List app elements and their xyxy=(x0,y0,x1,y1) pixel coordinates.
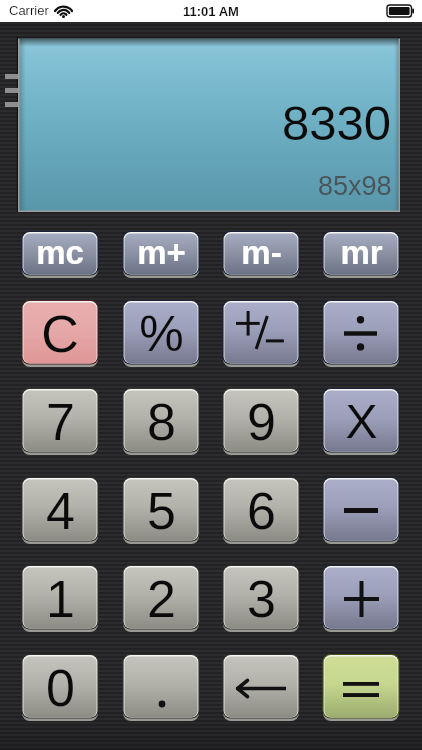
staticText: 8 xyxy=(147,393,176,451)
button[interactable]: Menu xyxy=(5,74,18,108)
staticText: C xyxy=(41,305,79,363)
button[interactable]: Plus minus xyxy=(222,300,300,367)
staticText: mc xyxy=(36,234,84,271)
button[interactable]: Decimal point xyxy=(122,654,200,721)
staticText: 85x98 xyxy=(318,171,392,201)
button[interactable]: m- xyxy=(222,231,300,278)
button[interactable]: % xyxy=(122,300,200,367)
button[interactable]: Minus xyxy=(322,477,400,544)
button[interactable]: 6 xyxy=(222,477,300,544)
staticText: 2 xyxy=(147,570,176,628)
button[interactable]: 8 xyxy=(122,388,200,455)
button[interactable]: 3 xyxy=(222,565,300,632)
staticText: 9 xyxy=(247,393,276,451)
button[interactable]: 1 xyxy=(21,565,99,632)
staticText: m- xyxy=(241,234,282,271)
button[interactable]: mc xyxy=(21,231,99,278)
button[interactable]: 5 xyxy=(122,477,200,544)
button[interactable]: Backspace xyxy=(222,654,300,721)
staticText: % xyxy=(139,306,184,362)
staticText: mr xyxy=(340,234,383,271)
staticText: 1 xyxy=(46,570,75,628)
staticText: 0 xyxy=(46,659,75,717)
button[interactable]: mr xyxy=(322,231,400,278)
button[interactable]: 9 xyxy=(222,388,300,455)
button[interactable]: 2 xyxy=(122,565,200,632)
staticText: 3 xyxy=(247,570,276,628)
staticText: X xyxy=(345,395,378,449)
button[interactable]: X xyxy=(322,388,400,455)
staticText: 4 xyxy=(46,482,75,540)
button[interactable]: Divide xyxy=(322,300,400,367)
button[interactable]: Equals xyxy=(322,654,400,721)
staticText: 7 xyxy=(46,393,75,451)
button[interactable]: Plus xyxy=(322,565,400,632)
staticText: m+ xyxy=(137,234,186,271)
button[interactable]: 7 xyxy=(21,388,99,455)
staticText: 8330 xyxy=(282,96,392,151)
button[interactable]: 4 xyxy=(21,477,99,544)
button[interactable]: C xyxy=(21,300,99,367)
button[interactable]: 8330 xyxy=(18,37,400,212)
staticText: 11:01 AM xyxy=(183,4,239,19)
staticText: 5 xyxy=(147,482,176,540)
staticText: 6 xyxy=(247,482,276,540)
button[interactable]: 0 xyxy=(21,654,99,721)
staticText: Carrier xyxy=(9,3,49,18)
button[interactable]: m+ xyxy=(122,231,200,278)
